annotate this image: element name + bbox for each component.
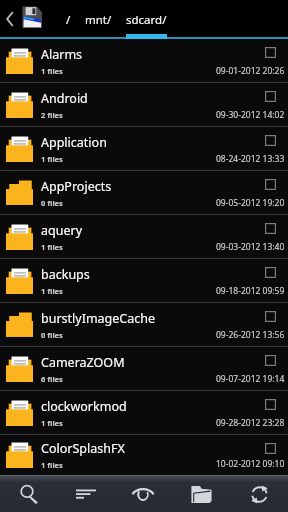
staticText: 09-05-2012 19:20 <box>216 197 285 209</box>
button[interactable]: / <box>59 0 78 39</box>
button[interactable]: mnt/ <box>78 0 119 39</box>
staticText: Android <box>41 90 88 107</box>
staticText: 08-24-2012 13:33 <box>216 153 285 165</box>
button[interactable]: Application <box>0 127 288 170</box>
button[interactable]: Select burstlyImageCache <box>264 310 276 322</box>
staticText: Alarms <box>41 46 83 63</box>
button[interactable]: Select AppProjects <box>264 178 276 190</box>
staticText: 0 files <box>41 198 63 208</box>
staticText: 0 files <box>41 330 63 340</box>
button[interactable]: Select ColorSplashFX <box>264 442 276 454</box>
button[interactable]: View <box>114 476 172 512</box>
button[interactable]: Folder <box>172 476 230 512</box>
staticText: mnt/ <box>85 12 112 28</box>
staticText: burstlyImageCache <box>41 310 156 327</box>
button[interactable]: ColorSplashFX <box>0 435 288 475</box>
staticText: aquery <box>41 222 83 239</box>
staticText: 1 files <box>41 242 63 252</box>
button[interactable]: Sort <box>57 476 114 512</box>
button[interactable]: Select clockworkmod <box>264 398 276 410</box>
button[interactable]: Storage <box>20 0 44 39</box>
staticText: CameraZOOM <box>41 354 125 371</box>
staticText: 09-26-2012 13:56 <box>216 329 285 341</box>
staticText: sdcard/ <box>126 12 167 28</box>
staticText: 6 files <box>41 374 63 384</box>
button[interactable]: Select Alarms <box>264 46 276 58</box>
staticText: 10-02-2012 09:10 <box>216 458 285 470</box>
button[interactable]: Select aquery <box>264 222 276 234</box>
button[interactable]: Refresh <box>230 476 288 512</box>
button[interactable]: Select CameraZOOM <box>264 354 276 366</box>
staticText: Application <box>41 134 107 151</box>
staticText: 09-28-2012 23:28 <box>216 417 285 429</box>
button[interactable]: clockworkmod <box>0 391 288 434</box>
button[interactable]: Select backups <box>264 266 276 278</box>
button[interactable]: Alarms <box>0 39 288 82</box>
staticText: AppProjects <box>41 178 112 195</box>
staticText: 1 files <box>41 418 63 428</box>
staticText: 09-03-2012 13:40 <box>216 241 285 253</box>
staticText: 09-01-2012 20:26 <box>216 65 285 77</box>
staticText: backups <box>41 266 90 283</box>
staticText: ColorSplashFX <box>41 440 125 457</box>
staticText: 1 files <box>41 66 63 76</box>
button[interactable]: Select Android <box>264 90 276 102</box>
staticText: 1 files <box>41 286 63 296</box>
button[interactable]: backups <box>0 259 288 302</box>
staticText: 09-07-2012 19:14 <box>216 373 285 385</box>
staticText: 09-30-2012 14:02 <box>216 109 285 121</box>
staticText: 2 files <box>41 110 63 120</box>
button[interactable]: sdcard/ <box>119 0 174 39</box>
button[interactable]: Search <box>0 476 57 512</box>
button[interactable]: Android <box>0 83 288 126</box>
button[interactable]: burstlyImageCache <box>0 303 288 346</box>
staticText: clockworkmod <box>41 398 127 415</box>
button[interactable]: Select Application <box>264 134 276 146</box>
staticText: 09-18-2012 09:59 <box>216 285 285 297</box>
button[interactable]: Back <box>0 0 20 39</box>
staticText: / <box>66 12 71 28</box>
button[interactable]: CameraZOOM <box>0 347 288 390</box>
staticText: 1 files <box>41 154 63 164</box>
button[interactable]: aquery <box>0 215 288 258</box>
button[interactable]: AppProjects <box>0 171 288 214</box>
staticText: 1 files <box>41 460 63 470</box>
